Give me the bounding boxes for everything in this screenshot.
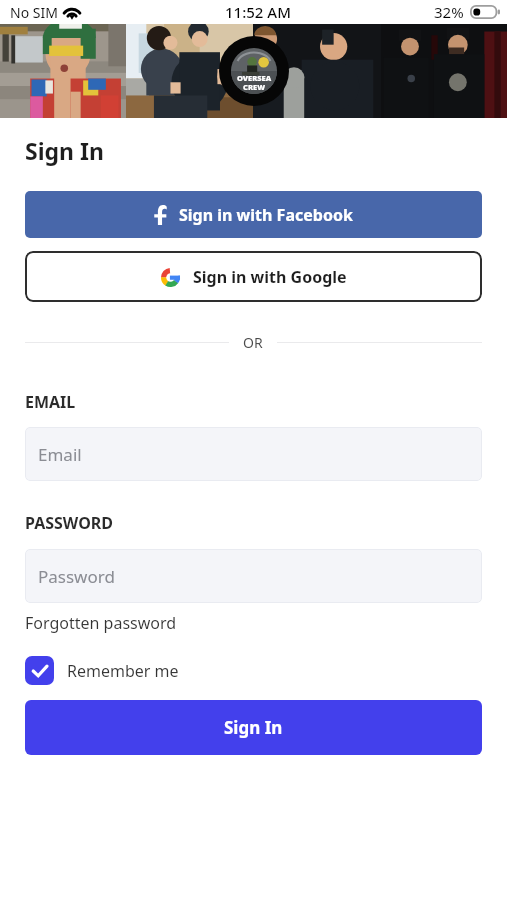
staticText: Password xyxy=(38,565,115,588)
other: Oversea Crew logo xyxy=(219,36,289,106)
button[interactable]: Sign in with Google xyxy=(25,251,482,302)
staticText: OVERSEA CREW xyxy=(231,73,277,92)
button[interactable]: Remember me xyxy=(25,656,179,685)
staticText: Sign in with Facebook xyxy=(179,204,353,226)
button[interactable]: Password xyxy=(25,549,482,603)
button[interactable]: Sign In xyxy=(25,700,482,755)
staticText: Remember me xyxy=(67,660,179,682)
staticText: Forgotten password xyxy=(25,612,177,634)
staticText: EMAIL xyxy=(25,391,76,413)
staticText: 11:52 AM xyxy=(225,2,291,22)
staticText: Sign In xyxy=(25,135,104,166)
button[interactable]: Sign in with Facebook xyxy=(25,191,482,238)
button[interactable]: Forgotten password xyxy=(25,612,177,634)
staticText: No SIM xyxy=(10,3,58,22)
staticText: 32% xyxy=(434,2,464,22)
staticText: PASSWORD xyxy=(25,512,114,534)
staticText: Sign In xyxy=(224,716,283,739)
staticText: OR xyxy=(243,333,263,351)
staticText: Sign in with Google xyxy=(193,266,347,288)
button[interactable]: Email xyxy=(25,427,482,481)
staticText: Email xyxy=(38,443,82,466)
